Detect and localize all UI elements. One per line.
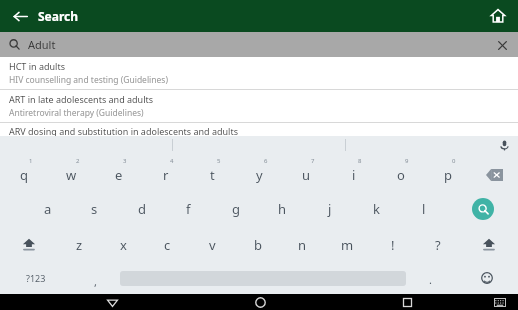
button[interactable]: j	[306, 191, 353, 227]
button[interactable]: 9	[377, 154, 424, 191]
staticText: x	[120, 236, 127, 254]
button[interactable]: ?123	[0, 262, 71, 294]
staticText: f	[186, 200, 191, 218]
staticText: i	[352, 166, 356, 184]
staticText: h	[278, 200, 287, 218]
button[interactable]: z	[57, 227, 101, 262]
staticText: ARV dosing and substitution in adolescen…	[9, 125, 238, 136]
button[interactable]: 5	[189, 154, 236, 191]
staticText: c	[164, 236, 171, 254]
staticText: 1	[29, 157, 33, 165]
staticText: ?123	[26, 272, 46, 284]
staticText: g	[232, 200, 240, 218]
staticText: Antiretroviral therapy (Guidelines)	[9, 107, 144, 119]
staticText: 3	[123, 157, 127, 165]
button[interactable]: a	[24, 191, 71, 227]
button[interactable]: Switch keyboard	[490, 294, 510, 310]
staticText: a	[44, 200, 52, 218]
button[interactable]: Search	[447, 191, 518, 227]
staticText: s	[91, 200, 98, 218]
staticText: j	[328, 200, 332, 218]
staticText: 9	[405, 157, 409, 165]
button[interactable]: Recents	[394, 294, 420, 310]
button[interactable]: b	[235, 227, 280, 262]
button[interactable]: 7	[283, 154, 330, 191]
button[interactable]: d	[118, 191, 165, 227]
staticText: k	[373, 200, 380, 218]
button[interactable]: n	[280, 227, 325, 262]
staticText: l	[422, 200, 426, 218]
staticText: HIV counselling and testing (Guidelines)	[9, 74, 168, 86]
button[interactable]: Emoji	[455, 262, 518, 294]
staticText: Search	[38, 8, 79, 24]
button[interactable]: Home	[247, 294, 273, 310]
button[interactable]: Back	[99, 294, 125, 310]
button[interactable]: ?	[415, 227, 460, 262]
button[interactable]: 6	[236, 154, 283, 191]
button[interactable]: k	[353, 191, 400, 227]
staticText: ?	[435, 236, 441, 254]
button[interactable]: 1	[0, 154, 48, 191]
staticText: HCT in adults	[9, 60, 65, 72]
button[interactable]: Back	[8, 4, 32, 28]
button[interactable]: v	[190, 227, 235, 262]
staticText: n	[298, 236, 307, 254]
button[interactable]: HCT in adults	[0, 57, 518, 89]
staticText: v	[209, 236, 216, 254]
button[interactable]: ARV dosing and substitution in adolescen…	[0, 123, 518, 136]
button[interactable]: m	[325, 227, 370, 262]
button[interactable]: s	[71, 191, 118, 227]
staticText: ,	[94, 274, 97, 289]
button[interactable]: Adult	[0, 32, 518, 57]
button[interactable]: 0	[424, 154, 471, 191]
button[interactable]: f	[165, 191, 212, 227]
staticText: 7	[311, 157, 315, 165]
staticText: 5	[217, 157, 221, 165]
button[interactable]: x	[101, 227, 145, 262]
button[interactable]: Shift	[460, 227, 518, 262]
staticText: .	[429, 272, 432, 287]
button[interactable]: Clear	[492, 35, 512, 55]
staticText: q	[20, 166, 28, 184]
button[interactable]: Backspace	[471, 154, 518, 191]
button[interactable]: Home	[486, 4, 510, 28]
button[interactable]: h	[259, 191, 306, 227]
staticText: p	[444, 166, 452, 184]
staticText: m	[341, 236, 354, 254]
staticText: t	[210, 166, 215, 184]
button[interactable]: c	[145, 227, 190, 262]
staticText: Adult	[28, 37, 56, 52]
staticText: 8	[358, 157, 362, 165]
button[interactable]: 4	[142, 154, 189, 191]
staticText: 4	[170, 157, 174, 165]
button[interactable]: Space	[120, 262, 406, 294]
button[interactable]: .	[406, 262, 455, 294]
staticText: r	[163, 166, 169, 184]
button[interactable]: Suggestion 3	[346, 136, 518, 154]
staticText: !	[391, 236, 395, 254]
button[interactable]: 3	[95, 154, 142, 191]
staticText: u	[302, 166, 311, 184]
staticText: b	[254, 236, 262, 254]
staticText: o	[397, 166, 405, 184]
button[interactable]: !	[370, 227, 415, 262]
button[interactable]: ,	[71, 262, 120, 294]
button[interactable]: Shift	[0, 227, 57, 262]
button[interactable]: ART in late adolescents and adults	[0, 90, 518, 122]
staticText: 0	[452, 157, 456, 165]
button[interactable]: 8	[330, 154, 377, 191]
button[interactable]: Voice input	[496, 137, 512, 153]
staticText: 2	[76, 157, 80, 165]
button[interactable]: 2	[48, 154, 95, 191]
staticText: 6	[264, 157, 268, 165]
staticText: d	[138, 200, 146, 218]
staticText: e	[115, 166, 123, 184]
staticText: z	[76, 236, 83, 254]
staticText: w	[66, 166, 77, 184]
button[interactable]: g	[212, 191, 259, 227]
button[interactable]: l	[400, 191, 447, 227]
staticText: y	[256, 166, 263, 184]
staticText: ART in late adolescents and adults	[9, 93, 154, 105]
